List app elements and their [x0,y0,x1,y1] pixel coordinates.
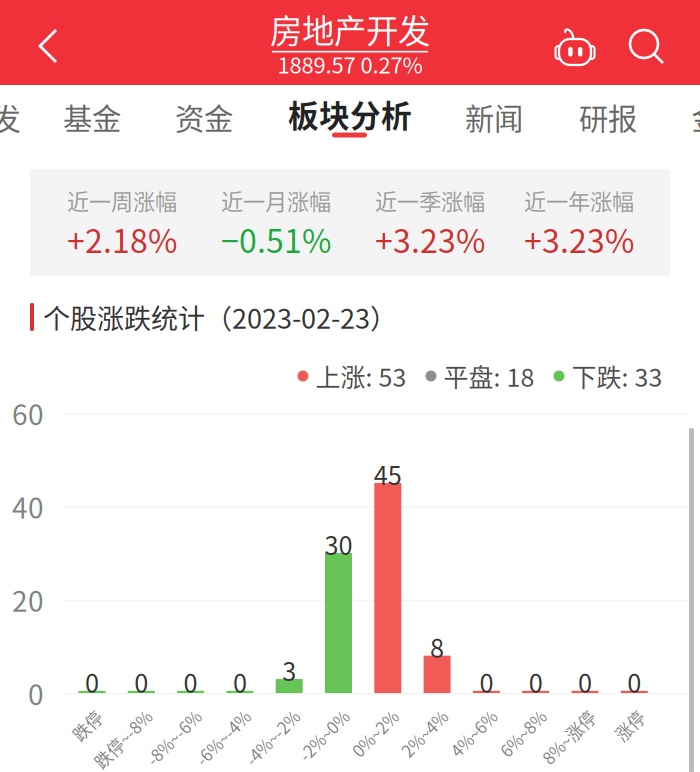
staticText: -2%~0% [276,704,339,728]
button[interactable]: 研报 [0,85,68,149]
staticText: 新闻 [465,96,523,138]
staticText: 1889.57 0.27% [277,48,422,80]
staticText: +2.18% [67,216,177,262]
staticText: 金 [691,96,700,138]
staticText: 房地产开发 [270,5,430,52]
staticText: −0.51% [221,216,331,262]
staticText: 8 [430,628,444,665]
staticText: +3.23% [375,216,485,262]
staticText: 0 [479,663,493,700]
staticText: 45 [374,456,402,492]
staticText: 跌停~-8% [69,704,142,728]
button[interactable]: 基金 [0,85,68,149]
staticText: 2%~4% [381,704,438,728]
staticText: 6%~8% [480,704,537,728]
staticText: 4%~6% [430,704,487,728]
staticText: 20 [12,579,44,620]
staticText: 0 [233,663,247,700]
staticText: 平盘: 18 [443,358,534,394]
button[interactable]: AI assistant [0,0,56,58]
button[interactable]: Search [0,0,56,52]
button[interactable]: 新闻 [0,85,68,149]
staticText: 30 [324,526,352,562]
staticText: 涨停 [601,704,635,728]
staticText: 下跌: 33 [571,358,662,394]
staticText: 跌停 [59,704,93,728]
staticText: 0 [184,663,198,700]
button[interactable]: 资金 [0,85,68,149]
staticText: 40 [12,486,44,527]
staticText: -8%~-6% [123,704,192,728]
staticText: 0 [529,663,543,700]
staticText: 资金 [175,96,233,138]
staticText: 上涨: 53 [315,358,406,394]
staticText: 近一年涨幅 [524,184,634,216]
staticText: 发 [0,96,20,138]
staticText: 0 [85,663,99,700]
staticText: 板块分析 [288,92,412,136]
staticText: 0 [28,673,44,713]
staticText: 近一月涨幅 [221,184,331,216]
staticText: -6%~-4% [172,704,241,728]
staticText: 0 [627,663,641,700]
staticText: 研报 [579,96,637,138]
staticText: 3 [282,652,296,688]
button[interactable]: Back [0,0,56,52]
staticText: 个股涨跌统计（2023-02-23） [43,297,397,337]
staticText: 60 [12,393,44,433]
staticText: 基金 [63,96,121,138]
staticText: 0%~2% [332,704,389,728]
staticText: 0 [578,663,592,700]
button[interactable]: 发 [0,85,44,149]
staticText: 近一周涨幅 [67,184,177,216]
button[interactable]: 金 [0,85,44,149]
staticText: -4%~-2% [221,704,290,728]
button[interactable]: 板块分析 [0,85,140,149]
staticText: 0 [134,663,148,700]
staticText: +3.23% [524,216,634,262]
staticText: 近一季涨幅 [375,184,485,216]
staticText: 8%~涨停 [519,704,586,728]
